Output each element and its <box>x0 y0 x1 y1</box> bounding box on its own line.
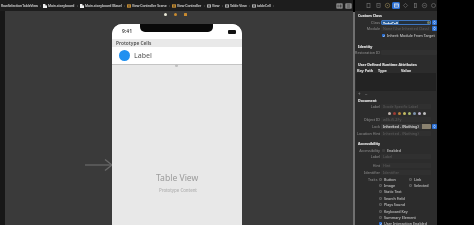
staticText: Image <box>384 183 396 188</box>
button[interactable]: View <box>207 0 225 11</box>
button[interactable]: View Controller <box>172 0 207 11</box>
button[interactable]: Label colour 3 <box>403 112 406 115</box>
button[interactable]: Static Text <box>379 188 402 194</box>
staticText: Selected <box>414 183 429 188</box>
staticText: User Interaction Enabled <box>384 221 427 225</box>
staticText: − <box>365 91 368 96</box>
staticText: View Controller <box>177 3 202 8</box>
button[interactable]: Main.storyboard (Base) <box>80 0 127 11</box>
button[interactable]: RowSelectionTableView <box>1 0 43 11</box>
button[interactable]: Location Hint <box>355 131 437 136</box>
staticText: Xcode Specific Label <box>383 104 418 109</box>
button[interactable]: Add attribute <box>357 91 362 96</box>
button[interactable]: Search Field <box>379 195 405 201</box>
button[interactable]: Label colour 0 <box>388 112 391 115</box>
button[interactable]: View Controller <box>164 13 167 16</box>
button[interactable]: Size inspector <box>411 2 419 9</box>
button[interactable]: Connections inspector <box>420 2 428 9</box>
staticText: Prototype Content <box>159 187 197 193</box>
button[interactable]: First Responder <box>174 13 177 16</box>
button[interactable]: Attributes inspector <box>401 2 409 9</box>
staticText: Keyboard Key <box>384 209 408 214</box>
staticText: Link <box>414 177 422 182</box>
staticText: › <box>271 3 276 8</box>
staticText: › <box>38 3 43 8</box>
button[interactable]: Bindings inspector <box>429 2 437 9</box>
button[interactable]: Label <box>112 47 242 64</box>
staticText: Identifier <box>383 170 399 175</box>
button[interactable]: Keyboard Key <box>379 208 408 214</box>
button[interactable]: Label colour 7 <box>423 112 426 115</box>
button[interactable]: Quick help inspector <box>383 2 391 9</box>
staticText: Label <box>383 154 393 159</box>
button[interactable]: Main.storyboard <box>43 0 80 11</box>
button[interactable]: Choose Module <box>432 26 437 31</box>
staticText: Enabled <box>387 148 401 153</box>
button[interactable]: tableCell <box>252 0 276 11</box>
staticText: Traits <box>368 177 378 182</box>
staticText: Restoration ID <box>355 50 380 55</box>
button[interactable]: User Interaction Enabled <box>379 220 427 225</box>
button[interactable]: Label colour 6 <box>418 112 421 115</box>
button[interactable]: Lock <box>355 124 437 129</box>
staticText: Main.storyboard <box>48 3 75 8</box>
button[interactable]: Assistant editor <box>345 3 352 9</box>
staticText: tableCell <box>257 3 271 8</box>
button[interactable]: File inspector <box>364 2 372 9</box>
staticText: Type <box>378 68 401 73</box>
button[interactable]: Plays Sound <box>379 201 405 207</box>
button[interactable]: Remove attribute <box>364 91 369 96</box>
button[interactable]: Link <box>409 176 422 182</box>
staticText: Inherited - (Nothing) <box>383 131 419 136</box>
staticText: Module <box>355 26 380 31</box>
button[interactable]: Label <box>355 104 437 109</box>
button[interactable]: Label colour 1 <box>393 112 396 115</box>
button[interactable]: Label colour 2 <box>398 112 401 115</box>
staticText: wEk-i5-2Fy <box>383 117 402 122</box>
staticText: Main.storyboard (Base) <box>85 3 122 8</box>
staticText: Inherit Module From Target <box>387 33 435 38</box>
button[interactable]: Accessibility <box>355 147 437 153</box>
button[interactable]: Label <box>355 154 437 159</box>
button[interactable]: Object ID <box>355 117 437 122</box>
button[interactable]: Summary Element <box>379 214 416 220</box>
button[interactable]: History inspector <box>374 2 382 9</box>
staticText: Document <box>358 98 377 103</box>
staticText: Static Text <box>384 189 402 194</box>
staticText: Location Hint <box>355 131 380 136</box>
button[interactable]: Identity inspector <box>392 2 400 9</box>
button[interactable]: Identifier <box>355 170 437 175</box>
button[interactable]: Table View <box>225 0 252 11</box>
staticText: Value <box>401 68 412 73</box>
staticText: Accessibility <box>355 148 380 153</box>
button[interactable]: Inherit Module From Target <box>355 32 437 38</box>
staticText: › <box>75 3 80 8</box>
staticText: Identifier <box>355 170 380 175</box>
staticText: Label <box>134 51 152 61</box>
staticText: Key Path <box>357 68 378 73</box>
button[interactable]: Label colour 4 <box>408 112 411 115</box>
button[interactable]: Button <box>379 176 396 182</box>
button[interactable]: View Controller Scene <box>127 0 172 11</box>
staticText: Custom Class <box>358 13 382 18</box>
staticText: Label <box>355 154 380 159</box>
button[interactable]: Hint <box>355 163 437 168</box>
staticText: + <box>358 91 361 96</box>
staticText: RowSelectionTableView <box>1 3 38 8</box>
button[interactable]: Choose Class <box>432 20 437 25</box>
staticText: None (Use Inherited Class) <box>383 26 429 31</box>
staticText: Accessibility <box>358 141 381 146</box>
staticText: › <box>220 3 225 8</box>
button[interactable]: Exit <box>184 13 187 16</box>
button[interactable]: Choose Lock <box>432 124 437 129</box>
button[interactable]: Restoration ID <box>355 50 437 55</box>
button[interactable]: Editor layout <box>336 3 343 9</box>
button[interactable]: Module <box>355 26 437 31</box>
button[interactable]: Label colour 5 <box>413 112 416 115</box>
staticText: › <box>167 3 172 8</box>
staticText: › <box>247 3 252 8</box>
button[interactable]: Image <box>379 182 396 188</box>
staticText: View <box>212 3 220 8</box>
button[interactable]: Class <box>355 20 437 25</box>
button[interactable]: Selected <box>409 182 429 188</box>
